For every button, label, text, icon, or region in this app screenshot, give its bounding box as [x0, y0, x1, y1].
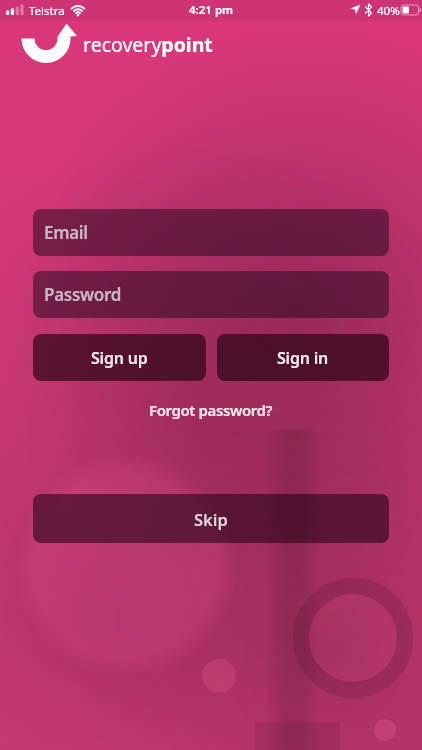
- staticText: 40%: [377, 3, 400, 19]
- staticText: 4:21 pm: [189, 2, 234, 18]
- staticText: Sign up: [91, 347, 148, 369]
- button[interactable]: Sign in: [217, 334, 389, 381]
- staticText: Email: [44, 221, 88, 244]
- button[interactable]: Sign up: [33, 334, 206, 381]
- button[interactable]: Skip: [33, 494, 389, 543]
- staticText: Telstra: [29, 3, 65, 19]
- button[interactable]: Password: [33, 271, 389, 318]
- button[interactable]: Forgot password?: [141, 398, 281, 422]
- staticText: recoverypoint: [83, 31, 213, 58]
- button[interactable]: Email: [33, 209, 389, 256]
- staticText: Password: [44, 283, 122, 306]
- staticText: Skip: [194, 508, 228, 530]
- staticText: Forgot password?: [149, 400, 273, 420]
- staticText: Sign in: [277, 347, 329, 369]
